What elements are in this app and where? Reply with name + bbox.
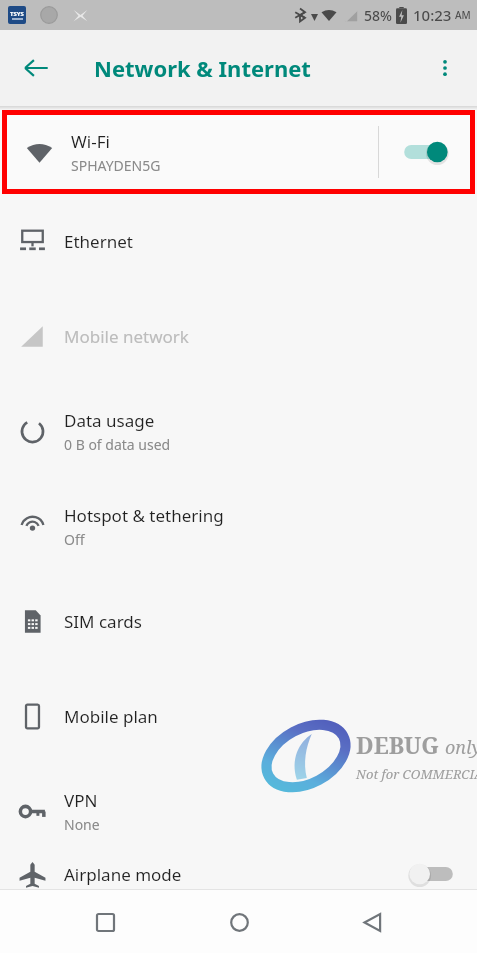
- button[interactable]: Navigate up: [10, 42, 62, 94]
- staticText: None: [64, 815, 100, 834]
- staticText: 10:23: [413, 5, 452, 25]
- staticText: Ethernet: [64, 230, 133, 253]
- button[interactable]: Recent apps: [77, 894, 133, 950]
- button[interactable]: SIM cards: [0, 574, 477, 669]
- button[interactable]: Airplane mode toggle, off: [386, 859, 477, 889]
- button[interactable]: Mobile network: [0, 289, 477, 384]
- button[interactable]: Ethernet: [0, 194, 477, 289]
- button[interactable]: Wi-Fi toggle, on: [379, 115, 470, 189]
- staticText: AM: [455, 8, 471, 22]
- staticText: Data usage: [64, 409, 155, 432]
- staticText: SIM cards: [64, 610, 142, 633]
- staticText: SPHAYDEN5G: [71, 156, 161, 175]
- button[interactable]: Home: [211, 894, 267, 950]
- staticText: Hotspot & tethering: [64, 504, 224, 527]
- button[interactable]: Back: [344, 894, 400, 950]
- button[interactable]: Hotspot & tethering: [0, 479, 477, 574]
- staticText: Mobile network: [64, 325, 189, 348]
- staticText: DEBUG: [356, 729, 440, 760]
- staticText: 58%: [364, 6, 392, 25]
- staticText: Airplane mode: [64, 863, 182, 886]
- staticText: only: [445, 735, 477, 760]
- button[interactable]: Mobile plan: [0, 669, 477, 764]
- staticText: TSYS: [10, 10, 24, 18]
- button[interactable]: More options: [421, 44, 469, 92]
- button[interactable]: VPN: [0, 764, 477, 859]
- staticText: 0 B of data used: [64, 435, 171, 454]
- staticText: Mobile plan: [64, 705, 158, 728]
- staticText: Network & Internet: [94, 53, 311, 83]
- staticText: VPN: [64, 789, 98, 812]
- button[interactable]: Wi-Fi: [7, 115, 470, 189]
- button[interactable]: Airplane mode: [0, 859, 477, 889]
- staticText: Not for COMMERCIAL: [356, 765, 477, 783]
- button[interactable]: Data usage: [0, 384, 477, 479]
- staticText: Off: [64, 530, 85, 549]
- staticText: Wi-Fi: [71, 130, 110, 153]
